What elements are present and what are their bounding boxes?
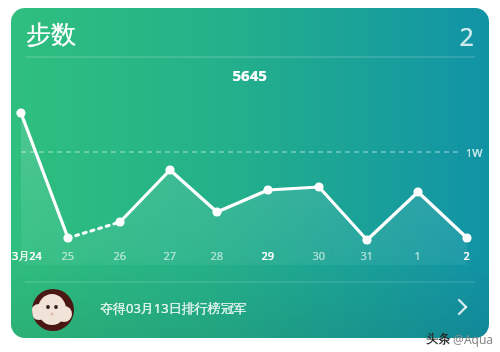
button[interactable]: 步数 steps card: [0, 0, 500, 352]
